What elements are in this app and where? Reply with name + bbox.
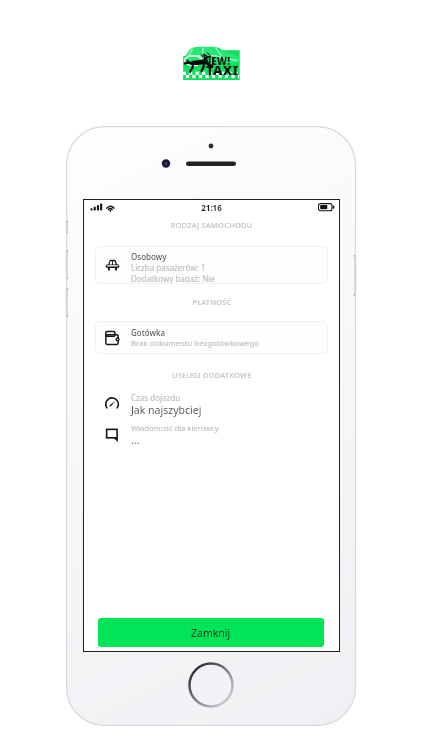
other: New Taxi logo — [182, 46, 240, 81]
staticText: 21:16 — [201, 202, 222, 213]
staticText: Dodatkowy bagaż: Nie — [131, 273, 215, 284]
staticText: Zamknij — [191, 626, 231, 640]
button[interactable]: Payment method — [95, 321, 328, 354]
staticText: RODZAJ SAMOCHODU — [170, 220, 253, 230]
other: Payment method — [105, 331, 119, 345]
staticText: Gotówka — [131, 327, 165, 338]
staticText: USŁUGI DODATKOWE — [172, 370, 252, 380]
staticText: PŁATNOŚĆ — [192, 297, 232, 307]
staticText: TAXI — [206, 61, 239, 79]
staticText: Czas dojazdu — [131, 392, 181, 403]
staticText: NEW! — [203, 54, 231, 68]
other: Message for driver — [105, 428, 119, 442]
staticText: ... — [131, 433, 140, 447]
button[interactable]: Zamknij — [98, 618, 324, 647]
other: Pickup time — [105, 398, 119, 410]
staticText: Osobowy — [131, 251, 167, 262]
button[interactable]: Car type — [95, 246, 328, 284]
other: Car type — [105, 259, 120, 271]
button[interactable]: Pickup time — [95, 389, 328, 419]
button[interactable]: Message for driver — [95, 420, 328, 450]
staticText: Jak najszybciej — [131, 403, 202, 417]
staticText: Wiadomość dla kierowcy — [131, 423, 219, 433]
staticText: Liczba pasażerów: 1 — [131, 262, 206, 273]
staticText: Brak dokumentu bezgotówkowego — [131, 338, 259, 349]
